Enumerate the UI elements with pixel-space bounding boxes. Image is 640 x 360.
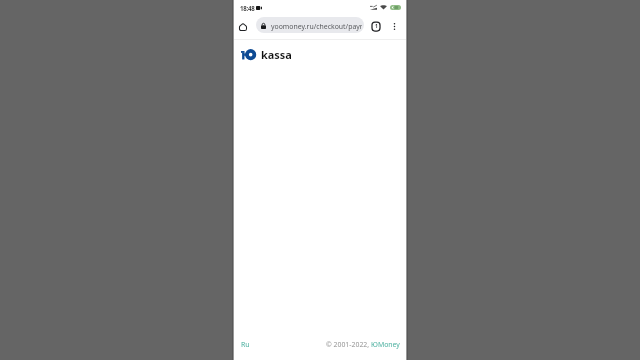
button[interactable]: Tabs <box>369 19 383 33</box>
button[interactable]: yoomoney.ru/checkout/payment <box>256 17 364 33</box>
staticText: Ru <box>241 340 250 350</box>
staticText: yoomoney.ru/checkout/payment <box>271 22 362 31</box>
button[interactable]: Home <box>236 20 250 34</box>
staticText: © 2001-2022, <box>326 340 371 349</box>
button[interactable]: Ru <box>241 340 250 350</box>
button[interactable]: ЮMoney <box>371 340 400 349</box>
staticText: 1 <box>375 23 378 30</box>
staticText: 18:48 <box>240 4 255 12</box>
button[interactable]: More options <box>387 19 401 33</box>
staticText: ЮMoney <box>371 340 400 349</box>
staticText: kassa <box>261 47 292 62</box>
